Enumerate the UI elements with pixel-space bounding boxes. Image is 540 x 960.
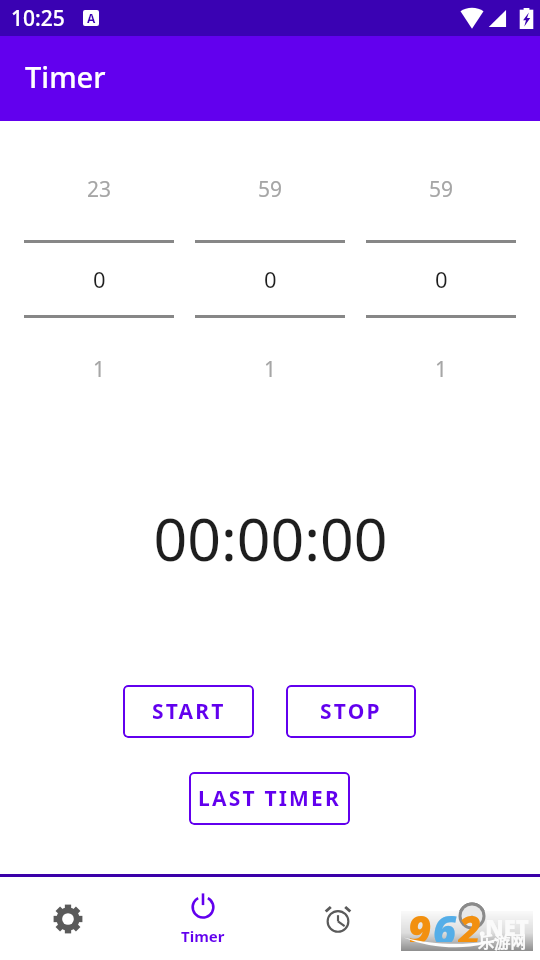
staticText: 1: [435, 355, 448, 384]
staticText: 乐游网: [478, 933, 526, 953]
staticText: START: [152, 697, 226, 726]
button[interactable]: 1: [195, 318, 345, 421]
staticText: A: [87, 10, 96, 26]
staticText: 00:00:00: [153, 498, 388, 578]
button[interactable]: STOP: [286, 685, 416, 738]
button[interactable]: Alarm: [270, 877, 405, 960]
button[interactable]: 0: [195, 243, 345, 315]
staticText: 10:25: [11, 4, 65, 33]
staticText: 23: [87, 175, 112, 204]
staticText: 1: [93, 355, 106, 384]
staticText: LAST TIMER: [198, 784, 342, 813]
staticText: 59: [258, 175, 283, 204]
staticText: .NET: [479, 912, 529, 942]
button[interactable]: Stopwatch: [405, 877, 540, 960]
button[interactable]: 1: [366, 318, 516, 421]
staticText: STOP: [320, 697, 382, 726]
button[interactable]: 23: [24, 138, 174, 240]
button[interactable]: 59: [195, 138, 345, 240]
button[interactable]: 0: [24, 243, 174, 315]
staticText: Timer: [181, 926, 225, 946]
staticText: 2: [458, 902, 482, 942]
staticText: 59: [429, 175, 454, 204]
staticText: 0: [435, 264, 448, 294]
staticText: 0: [93, 264, 106, 294]
button[interactable]: START: [123, 685, 254, 738]
button[interactable]: 59: [366, 138, 516, 240]
staticText: 6: [433, 902, 457, 942]
staticText: 1: [264, 355, 277, 384]
staticText: 9: [408, 902, 432, 942]
staticText: 0: [264, 264, 277, 294]
button[interactable]: LAST TIMER: [189, 772, 350, 825]
staticText: Timer: [25, 57, 106, 96]
button[interactable]: 0: [366, 243, 516, 315]
button[interactable]: Settings: [0, 877, 135, 960]
button[interactable]: Timer: [135, 877, 270, 960]
button[interactable]: 1: [24, 318, 174, 421]
